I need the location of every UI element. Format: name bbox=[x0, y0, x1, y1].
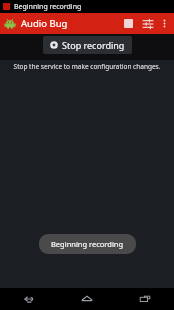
staticText: Stop recording bbox=[62, 39, 125, 51]
button[interactable]: More options bbox=[158, 13, 171, 34]
button[interactable]: Recents bbox=[116, 288, 174, 310]
button[interactable]: Stop bbox=[118, 13, 138, 34]
staticText: Stop the service to make configuration c… bbox=[4, 62, 170, 71]
staticText: Beginning recording bbox=[14, 2, 82, 12]
button[interactable]: Stop recording bbox=[43, 36, 132, 54]
button[interactable]: Home bbox=[58, 288, 116, 310]
staticText: Audio Bug bbox=[21, 17, 68, 30]
button[interactable]: Settings bbox=[138, 13, 158, 34]
button[interactable]: Back bbox=[0, 288, 58, 310]
staticText: Beginning recording bbox=[51, 239, 124, 249]
